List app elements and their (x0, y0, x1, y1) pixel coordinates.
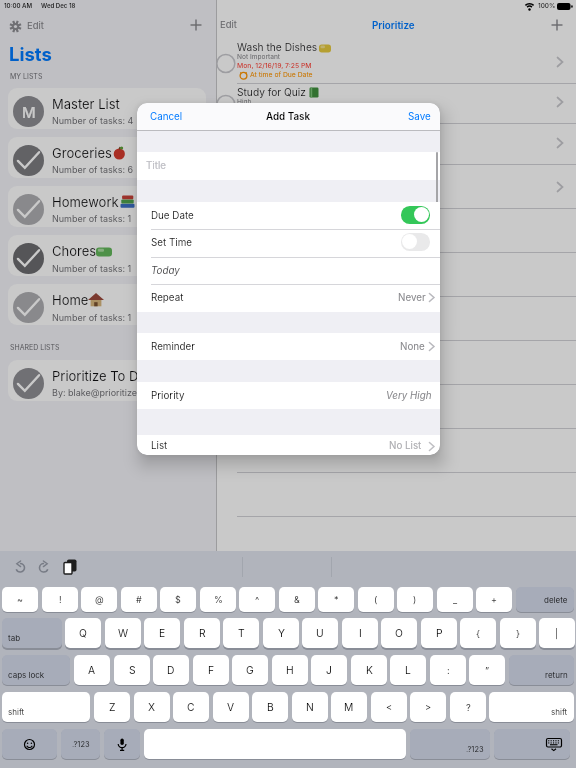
button[interactable]: A (74, 655, 110, 685)
staticText: $ (175, 594, 181, 605)
button[interactable]: < (371, 692, 407, 722)
button[interactable]: shift (2, 692, 90, 722)
button[interactable]: Q (65, 618, 101, 648)
button[interactable]: R (184, 618, 220, 648)
button[interactable] (188, 17, 204, 33)
button[interactable]: Title (137, 152, 440, 180)
button[interactable]: } (500, 618, 536, 648)
button[interactable] (8, 137, 206, 178)
staticText: ! (59, 594, 62, 605)
button[interactable]: | (539, 618, 575, 648)
button[interactable]: U (302, 618, 338, 648)
button[interactable]: L (390, 655, 426, 685)
button[interactable]: Reminder (137, 333, 440, 360)
button[interactable]: Z (94, 692, 130, 722)
button[interactable]: C (173, 692, 209, 722)
staticText: Q (79, 627, 87, 639)
button[interactable]: * (318, 587, 354, 612)
button[interactable] (549, 17, 565, 33)
button[interactable]: B (252, 692, 288, 722)
button[interactable]: { (460, 618, 496, 648)
button[interactable]: Edit (25, 18, 51, 32)
staticText: Edit (27, 20, 44, 31)
button[interactable]: J (311, 655, 347, 685)
button[interactable]: M (331, 692, 367, 722)
button[interactable]: @ (81, 587, 117, 612)
button[interactable]: : (430, 655, 466, 685)
button[interactable]: F (193, 655, 229, 685)
button[interactable]: tab (2, 618, 62, 648)
button[interactable]: ” (469, 655, 505, 685)
staticText: * (334, 594, 339, 605)
button[interactable]: delete (516, 587, 574, 612)
button[interactable] (2, 729, 57, 759)
button[interactable] (8, 235, 206, 276)
button[interactable]: Cancel (145, 108, 189, 126)
button[interactable]: .?123 (410, 729, 490, 759)
staticText: Number of tasks: 6 (52, 164, 134, 175)
staticText: } (516, 628, 520, 639)
button[interactable]: P (421, 618, 457, 648)
button[interactable]: H (272, 655, 308, 685)
button[interactable]: X (134, 692, 170, 722)
button[interactable]: shift (489, 692, 574, 722)
staticText: MY LISTS (10, 72, 43, 80)
button[interactable]: ( (358, 587, 394, 612)
staticText: @ (95, 594, 104, 605)
button[interactable]: ? (450, 692, 486, 722)
button[interactable] (144, 729, 406, 759)
staticText: ~ (17, 594, 23, 605)
button[interactable]: O (381, 618, 417, 648)
button[interactable]: Set Time (137, 229, 440, 256)
button[interactable]: Edit (220, 17, 246, 31)
button[interactable]: _ (437, 587, 473, 612)
button[interactable] (104, 729, 140, 759)
staticText: .?123 (72, 740, 90, 749)
button[interactable] (217, 34, 576, 83)
button[interactable] (8, 88, 206, 129)
button[interactable]: E (144, 618, 180, 648)
button[interactable]: T (223, 618, 259, 648)
button[interactable]: + (476, 587, 512, 612)
button[interactable]: # (121, 587, 157, 612)
button[interactable]: % (200, 587, 236, 612)
button[interactable]: caps lock (2, 655, 70, 685)
button[interactable]: G (232, 655, 268, 685)
staticText: Repeat (151, 292, 184, 304)
button[interactable]: D (153, 655, 189, 685)
button[interactable]: ~ (2, 587, 38, 612)
button[interactable] (8, 186, 206, 227)
button[interactable]: Save (403, 108, 437, 126)
button[interactable]: > (410, 692, 446, 722)
button[interactable]: Repeat (137, 284, 440, 311)
staticText: Due Date (151, 210, 194, 222)
button[interactable]: List (137, 435, 440, 455)
button[interactable]: V (213, 692, 249, 722)
button[interactable]: ) (397, 587, 433, 612)
staticText: Y (278, 627, 285, 639)
button[interactable] (8, 360, 206, 401)
button[interactable]: S (114, 655, 150, 685)
staticText: : (447, 665, 450, 676)
button[interactable]: K (351, 655, 387, 685)
staticText: tab (8, 633, 21, 643)
button[interactable]: & (279, 587, 315, 612)
button[interactable] (8, 284, 206, 325)
button[interactable]: $ (160, 587, 196, 612)
button[interactable]: return (509, 655, 574, 685)
button[interactable]: W (105, 618, 141, 648)
staticText: D (167, 664, 175, 676)
button[interactable]: Due Date (137, 202, 440, 229)
button[interactable]: I (342, 618, 378, 648)
button[interactable]: Priority (137, 382, 440, 409)
button[interactable]: Y (263, 618, 299, 648)
button[interactable]: ! (42, 587, 78, 612)
button[interactable] (494, 729, 570, 759)
staticText: H (286, 664, 294, 676)
staticText: R (199, 627, 206, 639)
button[interactable]: ^ (239, 587, 275, 612)
button[interactable]: N (292, 692, 328, 722)
button[interactable]: .?123 (61, 729, 100, 759)
staticText: Homework (52, 194, 119, 210)
button[interactable]: Today (137, 257, 440, 284)
